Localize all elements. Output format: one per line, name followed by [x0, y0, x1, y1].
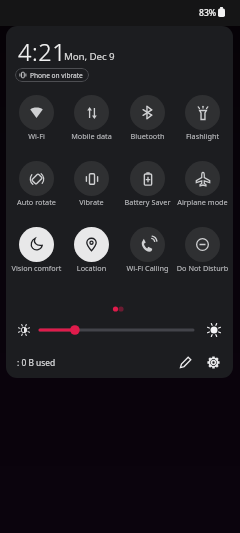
button[interactable]: Airplane mode	[175, 161, 230, 213]
staticText: 4:21	[18, 36, 67, 68]
button[interactable]: Phone on vibrate	[15, 68, 89, 82]
button[interactable]: Settings	[203, 352, 223, 372]
button[interactable]: Battery Saver	[120, 161, 175, 213]
staticText: : 0 B used	[17, 357, 56, 368]
button[interactable]: Edit	[176, 352, 196, 372]
staticText: Mobile data	[64, 131, 119, 141]
staticText: Do Not Disturb	[175, 263, 230, 273]
button[interactable]: Vibrate	[64, 161, 119, 213]
button[interactable]: Bluetooth	[120, 95, 175, 147]
staticText: Vision comfort	[9, 263, 64, 273]
staticText: Phone on vibrate	[30, 71, 83, 80]
staticText: Wi-Fi Calling	[120, 263, 175, 273]
button[interactable]: Location	[64, 227, 119, 279]
staticText: Flashlight	[175, 131, 230, 141]
button[interactable]: Brightness	[38, 324, 195, 336]
button[interactable]: Mobile data	[64, 95, 119, 147]
button[interactable]: Auto rotate	[9, 161, 64, 213]
staticText: Location	[64, 263, 119, 273]
staticText: Bluetooth	[120, 131, 175, 141]
staticText: Airplane mode	[175, 197, 230, 207]
button[interactable]: Wi-Fi Calling	[120, 227, 175, 279]
button[interactable]: Flashlight	[175, 95, 230, 147]
button[interactable]: Do Not Disturb	[175, 227, 230, 279]
staticText: Auto rotate	[9, 197, 64, 207]
button[interactable]: Wi-Fi	[9, 95, 64, 147]
staticText: Wi-Fi	[9, 131, 64, 141]
staticText: 83%	[199, 7, 217, 19]
staticText: Vibrate	[64, 197, 119, 207]
staticText: Battery Saver	[120, 197, 175, 207]
button[interactable]: Vision comfort	[9, 227, 64, 279]
staticText: Mon, Dec 9	[64, 50, 115, 63]
